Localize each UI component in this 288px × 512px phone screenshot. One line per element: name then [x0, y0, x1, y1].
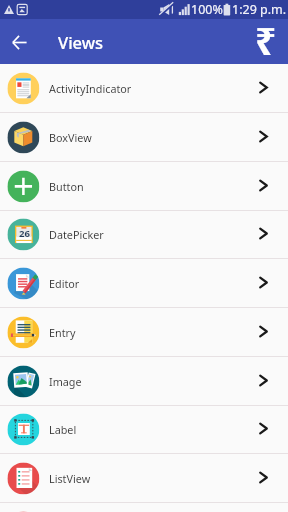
staticText: ActivityIndicator [49, 81, 132, 96]
button[interactable]: BoxView [0, 113, 288, 162]
staticText: Editor [49, 276, 80, 291]
staticText: Label [49, 422, 77, 437]
button[interactable]: ListView [0, 454, 288, 503]
staticText: 1:29 p.m. [232, 1, 287, 18]
staticText: Views [58, 31, 104, 53]
button[interactable]: Label [0, 405, 288, 454]
button[interactable]: Editor [0, 259, 288, 308]
button[interactable]: DatePicker [0, 210, 288, 259]
staticText: 100% [191, 1, 223, 18]
staticText: 26 [19, 227, 30, 240]
button[interactable]: Entry [0, 308, 288, 357]
staticText: Button [49, 179, 84, 194]
staticText: BoxView [49, 130, 92, 145]
button[interactable]: Price [250, 25, 284, 59]
button[interactable]: Button [0, 162, 288, 211]
staticText: ListView [49, 471, 91, 486]
staticText: ₹ [255, 15, 277, 65]
button[interactable]: Image [0, 357, 288, 406]
button[interactable]: ActivityIndicator [0, 64, 288, 113]
button[interactable]: Navigate up [6, 29, 32, 55]
staticText: Image [49, 374, 82, 389]
staticText: Entry [49, 325, 76, 340]
staticText: DatePicker [49, 227, 104, 242]
